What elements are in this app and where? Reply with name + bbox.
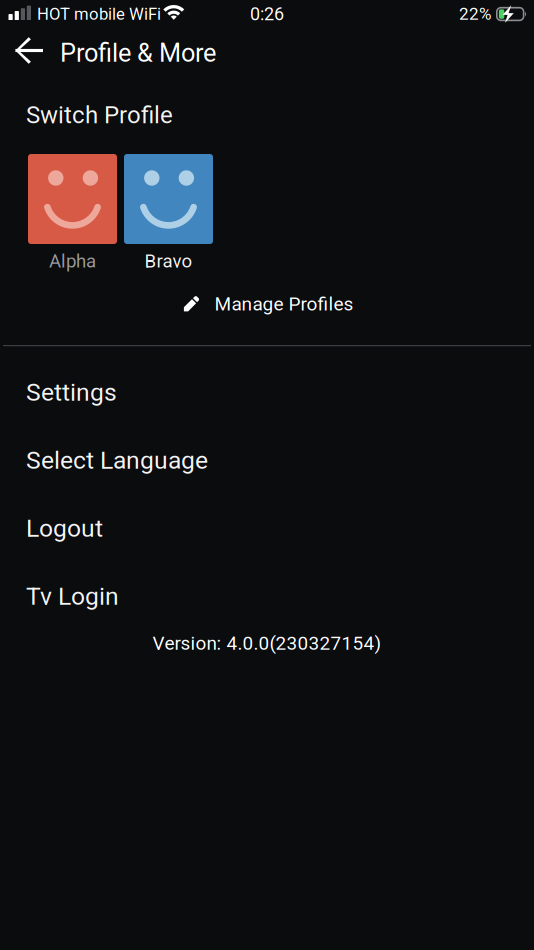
- staticText: Switch Profile: [26, 101, 173, 129]
- button[interactable]: Select Language: [0, 426, 534, 494]
- staticText: Manage Profiles: [214, 293, 353, 315]
- staticText: Alpha: [49, 250, 96, 272]
- button[interactable]: Logout: [0, 494, 534, 562]
- button[interactable]: Alpha: [28, 150, 117, 274]
- staticText: HOT mobile WiFi: [37, 4, 161, 24]
- staticText: Select Language: [26, 446, 208, 475]
- staticText: Logout: [26, 514, 103, 543]
- staticText: 22%: [459, 4, 492, 24]
- staticText: 0:26: [250, 3, 284, 25]
- button[interactable]: Tv Login: [0, 562, 534, 630]
- staticText: Settings: [26, 378, 117, 407]
- staticText: Tv Login: [26, 582, 119, 611]
- staticText: Profile & More: [60, 38, 216, 68]
- button[interactable]: Manage Profiles: [182, 284, 352, 324]
- button[interactable]: Bravo: [124, 150, 213, 274]
- staticText: Version: 4.0.0(230327154): [152, 632, 381, 654]
- button[interactable]: Settings: [0, 358, 534, 426]
- button[interactable]: Back: [0, 28, 60, 74]
- staticText: Bravo: [144, 250, 192, 272]
